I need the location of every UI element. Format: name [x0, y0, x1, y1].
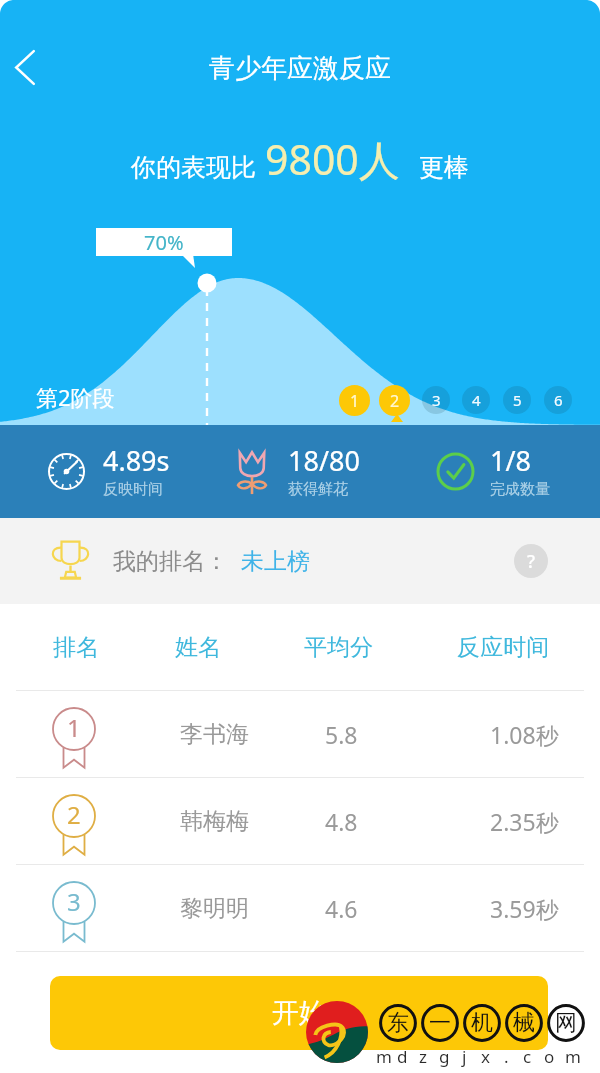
staticText: 一 [429, 1009, 451, 1037]
staticText: 2.35秒 [490, 806, 559, 837]
staticText: 我的排名： [113, 547, 228, 576]
staticText: 你的表现比 [131, 152, 256, 183]
staticText: 第2阶段 [36, 382, 115, 412]
staticText: 70% [144, 229, 184, 256]
button[interactable]: 3 [422, 386, 450, 414]
staticText: 1/8 [490, 442, 531, 479]
staticText: 青少年应激反应 [209, 52, 391, 85]
button[interactable]: 6 [544, 386, 572, 414]
staticText: 黎明明 [180, 894, 249, 923]
staticText: 3 [432, 390, 441, 410]
staticText: 5 [513, 390, 522, 410]
staticText: c [523, 1045, 532, 1068]
staticText: 1.08秒 [490, 719, 559, 750]
staticText: . [504, 1045, 509, 1068]
staticText: 未上榜 [241, 547, 310, 576]
staticText: m [376, 1045, 385, 1068]
staticText: 械 [513, 1009, 535, 1037]
button[interactable]: Help [514, 544, 548, 578]
staticText: 1 [350, 390, 360, 412]
button[interactable]: 5 [503, 386, 531, 414]
button[interactable]: 2 [0, 778, 600, 864]
button[interactable]: 4 [462, 386, 490, 414]
staticText: o [544, 1045, 553, 1068]
staticText: 2 [67, 798, 81, 831]
staticText: 4.8 [325, 806, 358, 837]
staticText: 4.6 [325, 893, 358, 924]
staticText: g [439, 1045, 448, 1068]
staticText: 4 [472, 390, 481, 410]
button[interactable]: Back [0, 42, 50, 92]
button[interactable]: 开始 [50, 976, 548, 1050]
staticText: 5.8 [325, 719, 358, 750]
staticText: 6 [554, 390, 563, 410]
staticText: 18/80 [288, 442, 360, 479]
staticText: j [462, 1045, 467, 1068]
staticText: x [481, 1045, 490, 1068]
button[interactable]: 3 [0, 865, 600, 951]
button[interactable]: 1 [0, 691, 600, 777]
staticText: z [419, 1045, 427, 1068]
staticText: 韩梅梅 [180, 807, 249, 836]
staticText: 2 [390, 390, 400, 412]
staticText: 3 [67, 885, 81, 918]
staticText: 获得鲜花 [288, 480, 348, 499]
staticText: 反应时间 [457, 633, 549, 662]
staticText: 排名 [53, 633, 99, 662]
button[interactable]: 1 [339, 385, 370, 416]
staticText: 平均分 [304, 633, 373, 662]
staticText: 开始 [272, 996, 326, 1030]
button[interactable]: 我的排名： [0, 518, 600, 604]
staticText: 4.89s [103, 442, 170, 479]
staticText: 姓名 [175, 633, 221, 662]
button[interactable]: 2 [379, 385, 410, 416]
staticText: 更棒 [419, 152, 469, 183]
staticText: m [565, 1045, 574, 1068]
staticText: 3.59秒 [490, 893, 559, 924]
staticText: 9800人 [265, 131, 400, 187]
staticText: 东 [387, 1009, 409, 1037]
staticText: 完成数量 [490, 480, 550, 499]
staticText: 机 [471, 1009, 493, 1037]
staticText: 李书海 [180, 720, 249, 749]
staticText: 网 [555, 1009, 577, 1037]
staticText: 反映时间 [103, 480, 163, 499]
staticText: 1 [67, 711, 81, 744]
staticText: d [397, 1045, 406, 1068]
staticText: ? [527, 549, 536, 574]
